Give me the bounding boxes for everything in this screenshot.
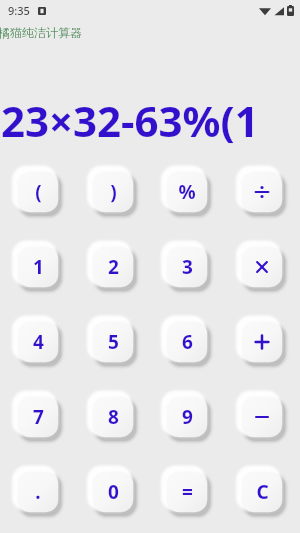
- button[interactable]: C: [236, 466, 288, 518]
- staticText: 0: [108, 479, 119, 505]
- button[interactable]: Minus: [236, 391, 288, 443]
- button[interactable]: Plus: [236, 316, 288, 368]
- button[interactable]: 5: [87, 316, 139, 368]
- staticText: 5: [108, 329, 119, 355]
- button[interactable]: Divide: [236, 166, 288, 218]
- staticText: 1: [33, 254, 44, 280]
- staticText: 8: [108, 404, 119, 430]
- button[interactable]: 4: [12, 316, 64, 368]
- button[interactable]: .: [12, 466, 64, 518]
- other: Multiply: [255, 260, 269, 274]
- staticText: ): [110, 179, 117, 205]
- staticText: %: [178, 179, 196, 205]
- button[interactable]: 3: [161, 241, 213, 293]
- other: Plus: [254, 334, 270, 350]
- button[interactable]: =: [161, 466, 213, 518]
- other: Minus: [255, 410, 269, 424]
- staticText: 9: [182, 404, 193, 430]
- staticText: 4: [33, 329, 44, 355]
- button[interactable]: 2: [87, 241, 139, 293]
- button[interactable]: 8: [87, 391, 139, 443]
- staticText: 2: [108, 254, 119, 280]
- staticText: .: [35, 479, 41, 505]
- staticText: 6: [182, 329, 193, 355]
- staticText: 9:35: [8, 3, 30, 18]
- staticText: 23×32-63%(1: [1, 92, 259, 149]
- button[interactable]: 1: [12, 241, 64, 293]
- button[interactable]: 0: [87, 466, 139, 518]
- button[interactable]: ): [87, 166, 139, 218]
- other: Divide: [254, 184, 270, 200]
- button[interactable]: 9: [161, 391, 213, 443]
- staticText: 橘猫纯洁计算器: [0, 25, 82, 40]
- staticText: 7: [33, 404, 44, 430]
- button[interactable]: 橘猫纯洁计算器: [0, 21, 300, 43]
- button[interactable]: Multiply: [236, 241, 288, 293]
- staticText: (: [35, 179, 42, 205]
- staticText: =: [182, 479, 193, 505]
- button[interactable]: 7: [12, 391, 64, 443]
- button[interactable]: 6: [161, 316, 213, 368]
- staticText: 3: [182, 254, 193, 280]
- staticText: C: [256, 479, 269, 505]
- button[interactable]: %: [161, 166, 213, 218]
- button[interactable]: (: [12, 166, 64, 218]
